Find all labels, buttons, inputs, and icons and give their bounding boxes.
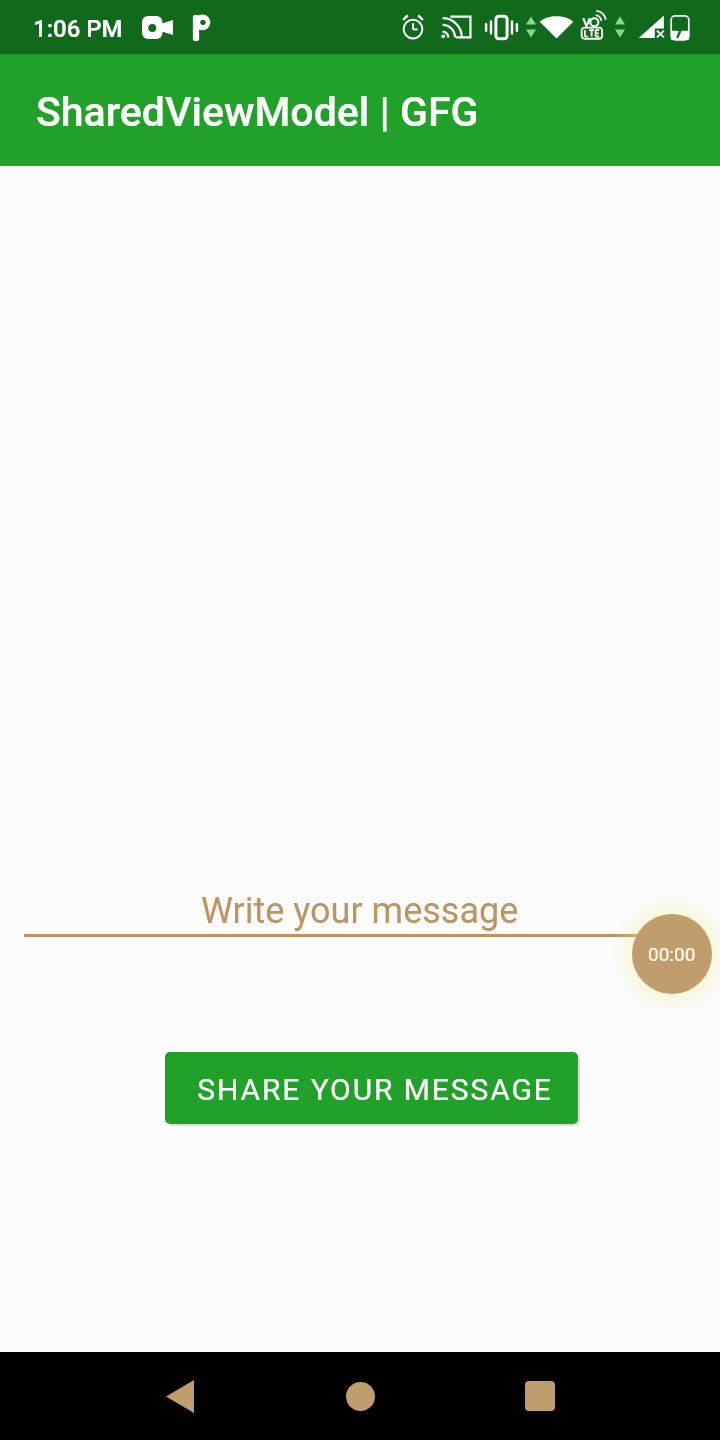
button[interactable]: SHARE YOUR MESSAGE bbox=[165, 1052, 578, 1124]
button[interactable]: Recent apps bbox=[480, 1352, 600, 1440]
staticText: Write your message bbox=[201, 890, 519, 932]
button[interactable]: Back bbox=[120, 1352, 240, 1440]
button[interactable]: Home bbox=[300, 1352, 420, 1440]
staticText: SharedViewModel | GFG bbox=[36, 88, 479, 136]
staticText: 1:06 PM bbox=[33, 15, 123, 43]
staticText: 00:00 bbox=[648, 943, 696, 965]
button[interactable]: Recording timer bbox=[632, 914, 712, 994]
staticText: SHARE YOUR MESSAGE bbox=[197, 1072, 553, 1107]
button[interactable]: Write your message bbox=[24, 876, 696, 937]
